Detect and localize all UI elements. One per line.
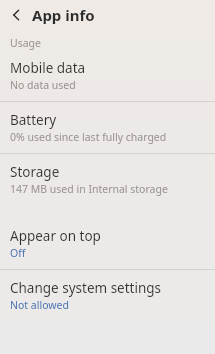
- button[interactable]: Battery: [0, 102, 215, 153]
- button[interactable]: Change system settings: [0, 270, 215, 321]
- staticText: Appear on top: [10, 227, 101, 245]
- staticText: Usage: [10, 36, 41, 50]
- staticText: Battery: [10, 111, 57, 129]
- staticText: Storage: [10, 163, 60, 181]
- button[interactable]: Storage: [0, 154, 215, 205]
- staticText: Change system settings: [10, 279, 162, 297]
- button[interactable]: Back: [2, 0, 32, 30]
- button[interactable]: Appear on top: [0, 227, 215, 269]
- staticText: Mobile data: [10, 59, 86, 77]
- staticText: No data used: [10, 78, 76, 92]
- staticText: Not allowed: [10, 298, 69, 312]
- staticText: Off: [10, 246, 26, 260]
- button[interactable]: Mobile data: [0, 50, 215, 101]
- staticText: 147 MB used in Internal storage: [10, 182, 168, 196]
- staticText: 0% used since last fully charged: [10, 130, 167, 144]
- staticText: App info: [32, 5, 95, 25]
